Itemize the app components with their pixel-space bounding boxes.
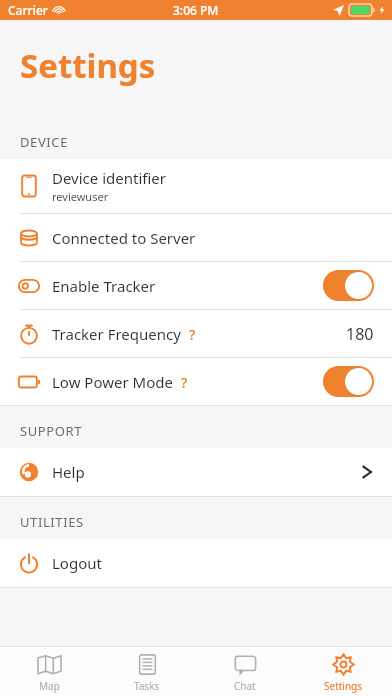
staticText: 180 [346, 323, 374, 345]
staticText: Low Power Mode [52, 372, 173, 392]
button[interactable]: Settings [294, 647, 392, 696]
staticText: Tasks [134, 679, 160, 693]
button[interactable]: Help [0, 448, 392, 496]
staticText: Carrier [8, 2, 48, 18]
staticText: Connected to Server [52, 228, 196, 248]
button[interactable]: Device identifier [0, 159, 392, 213]
button[interactable]: Connected to Server [0, 214, 392, 261]
button[interactable]: Logout [0, 539, 392, 587]
button[interactable]: ? [189, 325, 196, 344]
staticText: Settings [20, 43, 156, 88]
staticText: Tracker Frequency [52, 324, 181, 344]
button[interactable]: Tracker Frequency [0, 310, 392, 357]
staticText: Settings [324, 679, 363, 693]
staticText: reviewuser [52, 189, 109, 204]
staticText: Device identifier [52, 168, 166, 188]
staticText: UTILITIES [20, 513, 84, 531]
staticText: Enable Tracker [52, 276, 156, 296]
button[interactable]: Map [0, 647, 98, 696]
staticText: Map [39, 679, 60, 693]
button[interactable]: Toggle [323, 366, 374, 397]
button[interactable]: Tasks [98, 647, 196, 696]
button[interactable]: Enable Tracker [0, 262, 392, 309]
staticText: 3:06 PM [173, 2, 219, 18]
staticText: DEVICE [20, 133, 68, 151]
staticText: Logout [52, 553, 102, 573]
button[interactable]: Low Power Mode [0, 358, 392, 405]
other: Open [360, 465, 374, 479]
button[interactable]: ? [181, 373, 188, 392]
button[interactable]: Toggle [323, 270, 374, 301]
button[interactable]: Chat [196, 647, 294, 696]
staticText: SUPPORT [20, 422, 83, 440]
staticText: Chat [234, 679, 256, 693]
staticText: Help [52, 462, 85, 482]
